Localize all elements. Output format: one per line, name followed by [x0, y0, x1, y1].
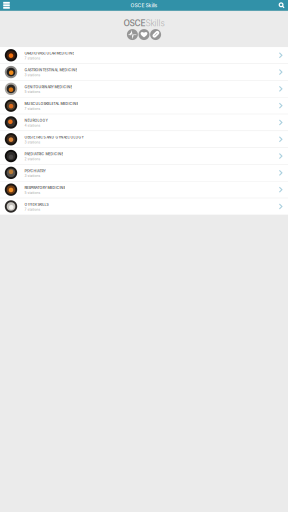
staticText: 3 stations	[24, 140, 40, 144]
button[interactable]: OBSTETRICS AND GYNAECOLOGY	[0, 131, 288, 147]
staticText: GASTROINTESTINAL MEDICINE	[24, 68, 77, 72]
staticText: PSYCHIATRY	[24, 169, 45, 173]
button[interactable]: PSYCHIATRY	[0, 165, 288, 181]
staticText: 7 stations	[24, 207, 40, 211]
staticText: 3 stations	[24, 73, 40, 77]
staticText: CARDIOVASCULAR MEDICINE	[24, 51, 74, 55]
button[interactable]: NEUROLOGY	[0, 114, 288, 131]
staticText: OBSTETRICS AND GYNAECOLOGY	[24, 135, 83, 139]
staticText: 5 stations	[24, 191, 40, 195]
button[interactable]: GENITOURINARY MEDICINE	[0, 81, 288, 97]
staticText: PAEDIATRIC MEDICINE	[24, 152, 63, 156]
staticText: 7 stations	[24, 107, 40, 111]
staticText: OSCE Skills	[130, 2, 157, 8]
staticText: GENITOURINARY MEDICINE	[24, 85, 72, 89]
staticText: NEUROLOGY	[24, 118, 47, 123]
button[interactable]: GASTROINTESTINAL MEDICINE	[0, 64, 288, 80]
button[interactable]: Search	[275, 0, 288, 11]
button[interactable]: MUSCULOSKELETAL MEDICINE	[0, 97, 288, 114]
button[interactable]: Menu	[0, 0, 13, 11]
staticText: OTHER SKILLS	[24, 202, 48, 207]
staticText: 4 stations	[24, 123, 40, 127]
staticText: OSCE	[123, 18, 145, 28]
staticText: RESPIRATORY MEDICINE	[24, 186, 65, 190]
staticText: MUSCULOSKELETAL MEDICINE	[24, 102, 78, 106]
button[interactable]: CARDIOVASCULAR MEDICINE	[0, 47, 288, 63]
button[interactable]: RESPIRATORY MEDICINE	[0, 181, 288, 198]
staticText: 2 stations	[24, 157, 40, 161]
staticText: 3 stations	[24, 174, 40, 178]
button[interactable]: PAEDIATRIC MEDICINE	[0, 148, 288, 164]
button[interactable]: OTHER SKILLS	[0, 198, 288, 215]
staticText: 7 stations	[24, 56, 40, 60]
staticText: 5 stations	[24, 90, 40, 94]
staticText: Skills	[145, 18, 164, 28]
